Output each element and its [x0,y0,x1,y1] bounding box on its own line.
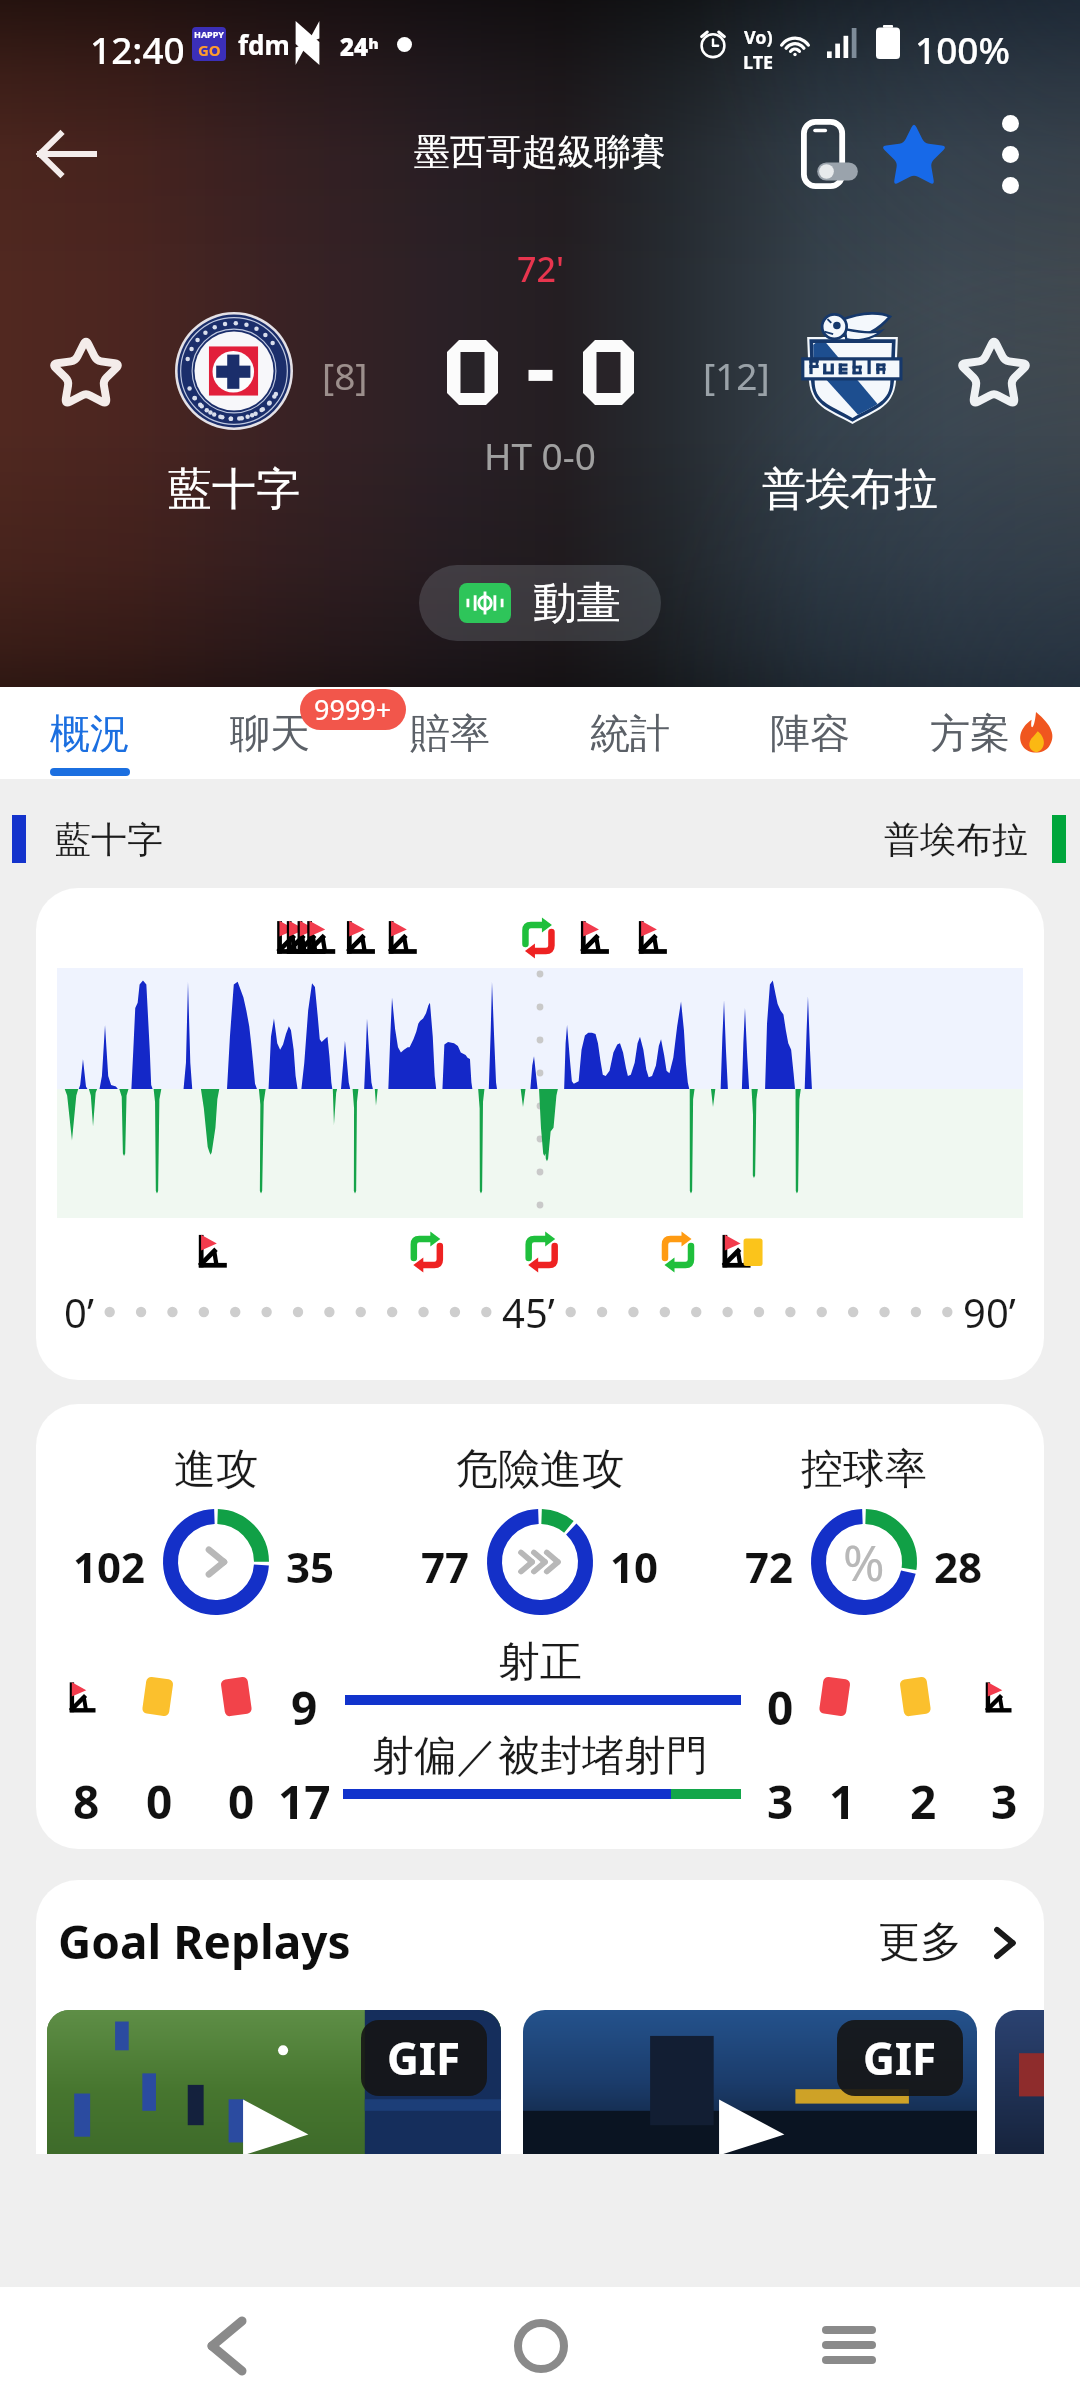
staticText: 0’ [64,1285,94,1339]
staticText: GO [198,40,221,60]
staticText: 72' [517,246,564,292]
staticText: 90’ [963,1285,1016,1339]
staticText: 統計 [590,708,670,758]
button[interactable]: 動畫 [419,565,661,641]
staticText: 危險進攻 [456,1443,624,1496]
button[interactable]: 陣容 [720,687,900,779]
staticText: 2 [910,1770,937,1833]
staticText: 藍十字 [55,817,163,862]
staticText: 28 [934,1538,983,1595]
staticText: 賠率 [410,708,490,758]
staticText: 24ʰ [340,30,379,63]
button[interactable]: 方案 [904,687,1080,779]
button[interactable]: 進攻 [36,1404,1044,1849]
button[interactable]: More options [962,103,1058,205]
button[interactable]: 概況 [0,687,180,779]
button[interactable]: Favourite away team [950,328,1038,416]
staticText: 陣容 [770,708,850,758]
button[interactable]: 聊天 [180,687,360,779]
staticText: 更多 [878,1916,962,1969]
staticText: % [843,1528,885,1596]
staticText: 10 [610,1538,659,1595]
button[interactable]: 0’ [36,888,1044,1380]
staticText: 普埃布拉 [762,462,938,517]
staticText: 射正 [498,1636,582,1689]
staticText: [12] [703,350,770,400]
staticText: [8] [322,350,368,400]
staticText: 72 [745,1538,794,1595]
button[interactable]: Goal replay [523,2010,977,2154]
staticText: 0 [146,1770,173,1833]
staticText: HT 0-0 [484,430,596,480]
staticText: GIF [387,2028,461,2088]
button[interactable]: Goal replay [995,2010,1044,2154]
staticText: 動畫 [533,576,621,631]
staticText: 進攻 [174,1443,258,1496]
staticText: 0 [767,1676,794,1739]
staticText: 藍十字 [168,462,300,517]
staticText: HAPPY [194,28,224,40]
staticText: 1 [829,1770,856,1833]
staticText: 102 [73,1538,146,1595]
button[interactable]: Favourite home team [42,328,130,416]
button[interactable]: Home [481,2287,601,2404]
staticText: GIF [863,2028,937,2088]
staticText: 0 [228,1770,255,1833]
staticText: 普埃布拉 [884,817,1028,862]
staticText: 聊天 [230,708,310,758]
staticText: 17 [278,1770,331,1833]
button[interactable]: Recent apps [789,2287,909,2404]
staticText: 9 [291,1676,318,1739]
button[interactable]: Mute notifications [782,103,878,205]
staticText: 概況 [50,708,130,758]
staticText: LTE [743,50,774,75]
staticText: Goal Replays [58,1910,351,1973]
staticText: 墨西哥超級聯賽 [414,129,666,174]
staticText: 3 [767,1770,794,1833]
staticText: 12:40 [90,24,185,74]
staticText: 35 [286,1538,335,1595]
button[interactable]: 賠率 [360,687,540,779]
staticText: 100% [915,24,1011,74]
staticText: 射偏／被封堵射門 [372,1730,708,1783]
button[interactable]: 更多 [878,1916,1026,1969]
button[interactable]: 統計 [540,687,720,779]
staticText: Vo) [744,25,773,50]
staticText: 9999+ [314,691,392,728]
staticText: 8 [73,1770,100,1833]
button[interactable]: Goal replay [47,2010,501,2154]
button[interactable]: Back [18,99,114,209]
staticText: 方案 [930,708,1010,758]
staticText: 3 [991,1770,1018,1833]
staticText: 77 [421,1538,470,1595]
button[interactable]: Favourite [866,103,962,205]
staticText: fdm [238,27,290,62]
staticText: 控球率 [801,1443,927,1496]
staticText: 45’ [502,1285,555,1339]
button[interactable]: Back [167,2287,287,2404]
